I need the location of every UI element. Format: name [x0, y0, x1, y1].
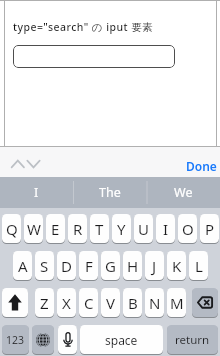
button[interactable]: N [145, 288, 164, 317]
button[interactable]: M [167, 288, 186, 317]
staticText: space [105, 332, 138, 348]
button[interactable]: U [134, 214, 153, 243]
staticText: return [175, 332, 210, 348]
button[interactable]: return [167, 325, 218, 354]
button[interactable]: space [80, 325, 163, 354]
button[interactable]: E [46, 214, 65, 243]
button[interactable]: Y [112, 214, 131, 243]
staticText: Y [117, 219, 126, 239]
staticText: L [195, 256, 203, 276]
staticText: P [205, 219, 215, 239]
staticText: T [95, 219, 104, 239]
button[interactable] [192, 288, 218, 317]
button[interactable]: The [73, 177, 146, 208]
staticText: 123 [6, 333, 25, 347]
button[interactable]: We [147, 177, 220, 208]
button[interactable]: J [145, 251, 164, 280]
staticText: B [128, 293, 138, 313]
button[interactable]: I [156, 214, 175, 243]
button[interactable]: C [79, 288, 98, 317]
staticText: N [149, 293, 161, 313]
staticText: O [182, 219, 194, 239]
staticText: Z [40, 293, 49, 313]
staticText: G [105, 256, 116, 276]
button[interactable]: K [167, 251, 186, 280]
staticText: W [27, 219, 41, 239]
button[interactable] [58, 325, 77, 354]
staticText: X [62, 293, 71, 313]
button[interactable]: Z [35, 288, 54, 317]
button[interactable]: G [101, 251, 120, 280]
staticText: The [99, 184, 121, 201]
button[interactable]: L [189, 251, 208, 280]
staticText: D [61, 256, 72, 276]
staticText: We [174, 184, 193, 201]
staticText: F [85, 256, 93, 276]
button[interactable]: Done [184, 155, 218, 177]
button[interactable]: X [57, 288, 76, 317]
button[interactable]: D [57, 251, 76, 280]
button[interactable]: O [178, 214, 197, 243]
staticText: H [127, 256, 139, 276]
button[interactable]: V [101, 288, 120, 317]
staticText: C [84, 293, 94, 313]
staticText: E [51, 219, 60, 239]
button[interactable] [2, 288, 28, 317]
button[interactable]: W [24, 214, 43, 243]
staticText: R [73, 219, 83, 239]
button[interactable] [32, 325, 54, 354]
staticText: Done [186, 158, 217, 174]
button[interactable] [13, 45, 175, 68]
staticText: U [138, 219, 149, 239]
button[interactable]: S [35, 251, 54, 280]
button[interactable]: H [123, 251, 142, 280]
button[interactable] [0, 146, 60, 177]
button[interactable]: R [68, 214, 87, 243]
button[interactable]: I [0, 177, 73, 208]
staticText: I [34, 184, 39, 201]
button[interactable]: P [200, 214, 219, 243]
staticText: V [106, 293, 116, 313]
staticText: A [18, 256, 28, 276]
staticText: K [172, 256, 182, 276]
staticText: Q [6, 219, 18, 239]
button[interactable]: 123 [2, 325, 29, 354]
staticText: M [170, 293, 184, 313]
staticText: I [163, 219, 169, 239]
button[interactable]: F [79, 251, 98, 280]
staticText: J [152, 256, 157, 276]
staticText: type="search" の iput 要素 [13, 20, 154, 34]
button[interactable]: A [13, 251, 32, 280]
button[interactable]: B [123, 288, 142, 317]
button[interactable]: T [90, 214, 109, 243]
button[interactable]: Q [2, 214, 21, 243]
staticText: S [40, 256, 49, 276]
